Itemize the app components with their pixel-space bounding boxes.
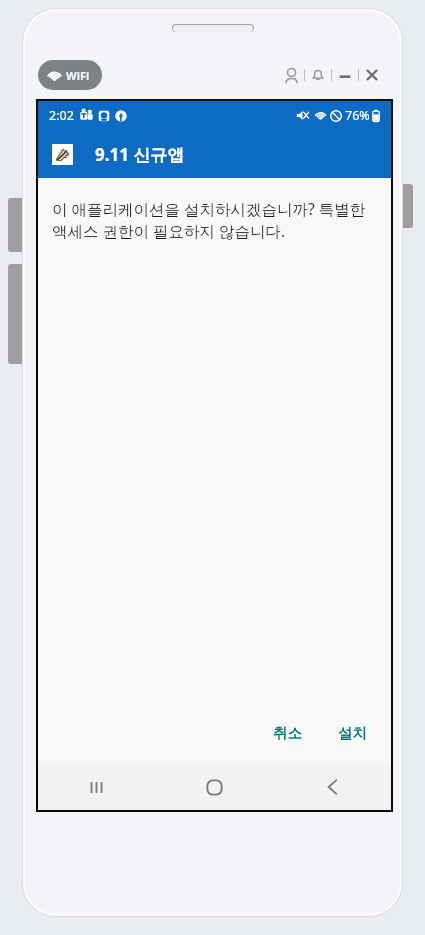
staticText: 76% bbox=[345, 107, 370, 124]
button[interactable]: Minimize bbox=[334, 64, 356, 86]
staticText: WiFi bbox=[66, 68, 90, 83]
button[interactable]: App icon bbox=[52, 144, 73, 165]
button[interactable]: Close bbox=[361, 64, 383, 86]
button[interactable]: WiFi connection bbox=[38, 60, 102, 90]
button[interactable]: Account bbox=[280, 64, 302, 86]
staticText: 취소 bbox=[273, 724, 302, 742]
button[interactable]: 설치 bbox=[326, 716, 379, 750]
staticText: 이 애플리케이션을 설치하시겠습니까? 특별한 액세스 권한이 필요하지 않습니… bbox=[52, 198, 373, 242]
staticText: 9.11 신규앱 bbox=[95, 143, 185, 166]
staticText: 설치 bbox=[338, 724, 367, 742]
button[interactable]: Notifications bbox=[307, 64, 329, 86]
button[interactable]: Back bbox=[273, 764, 391, 810]
button[interactable]: Home bbox=[155, 764, 273, 810]
button[interactable]: Recent apps bbox=[38, 764, 155, 810]
staticText: 2:02 bbox=[49, 107, 74, 124]
button[interactable]: 취소 bbox=[261, 716, 314, 750]
